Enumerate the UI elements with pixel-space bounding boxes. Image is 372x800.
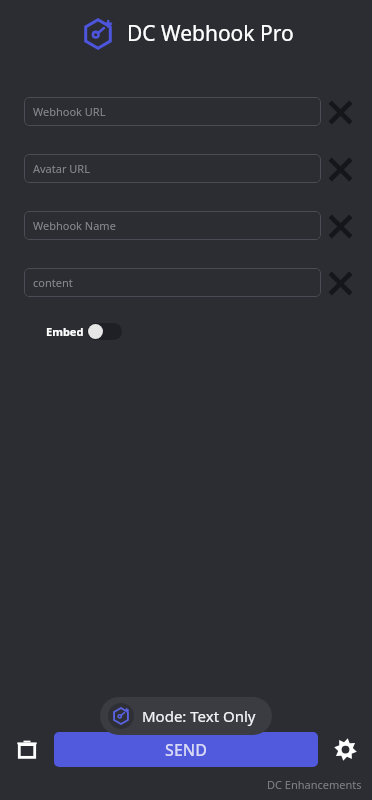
button[interactable]: SEND — [54, 732, 318, 767]
staticText: SEND — [165, 739, 207, 761]
staticText: Avatar URL — [33, 161, 90, 176]
staticText: content — [33, 275, 73, 290]
button[interactable]: Clear Webhook Name — [326, 212, 354, 240]
button[interactable]: Clear all — [8, 730, 46, 768]
staticText: DC Enhancements — [267, 777, 362, 792]
staticText: Mode: Text Only — [142, 706, 256, 726]
staticText: Webhook URL — [33, 104, 106, 119]
button[interactable]: Webhook URL — [24, 97, 321, 126]
button[interactable]: content — [24, 268, 321, 297]
button[interactable]: Webhook Name — [24, 211, 321, 240]
button[interactable]: Avatar URL — [24, 154, 321, 183]
button[interactable]: Settings — [326, 730, 364, 768]
staticText: Embed — [46, 324, 84, 339]
button[interactable]: Clear content — [326, 269, 354, 297]
button[interactable]: Mode: Text Only — [100, 697, 272, 735]
staticText: DC Webhook Pro — [127, 19, 294, 48]
button[interactable]: Embed — [46, 323, 122, 340]
button[interactable]: Clear Webhook URL — [326, 98, 354, 126]
staticText: Webhook Name — [33, 218, 116, 233]
button[interactable]: Clear Avatar URL — [326, 155, 354, 183]
